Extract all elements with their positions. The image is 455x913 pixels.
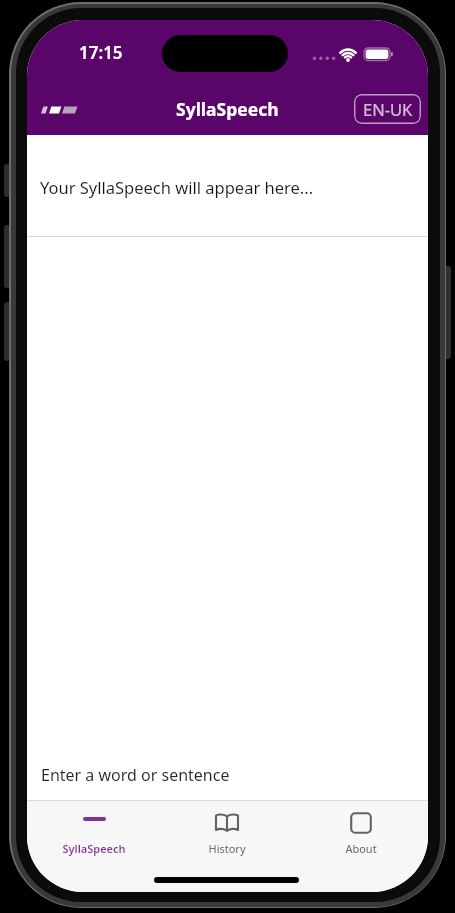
- staticText: Enter a word or sentence: [41, 764, 230, 786]
- staticText: About: [345, 841, 377, 856]
- button[interactable]: History: [160, 804, 294, 864]
- staticText: SyllaSpeech: [62, 841, 126, 856]
- button[interactable]: Enter a word or sentence: [27, 750, 428, 800]
- staticText: Your SyllaSpeech will appear here...: [40, 176, 314, 198]
- button[interactable]: EN-UK: [354, 94, 421, 124]
- staticText: 17:15: [79, 41, 123, 64]
- staticText: History: [208, 841, 246, 856]
- button[interactable]: SyllaSpeech: [27, 804, 160, 864]
- staticText: SyllaSpeech: [176, 97, 279, 121]
- button[interactable]: About: [294, 804, 428, 864]
- staticText: EN-UK: [363, 98, 413, 120]
